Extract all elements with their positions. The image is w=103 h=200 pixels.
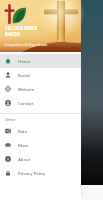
staticText: Privacy Policy (18, 170, 46, 176)
button[interactable]: Contact (0, 96, 81, 110)
button[interactable]: Social (0, 68, 81, 82)
button[interactable]: Website (0, 82, 81, 96)
staticText: TELUGU BIBLE (5, 25, 38, 31)
button[interactable]: Recents (75, 188, 84, 197)
button[interactable]: More (0, 138, 81, 152)
staticText: Social (18, 72, 30, 78)
staticText: telugubibleradio@gmail.com (4, 43, 48, 47)
staticText: Other (5, 117, 16, 122)
staticText: RADIO (5, 31, 20, 37)
staticText: About (18, 156, 31, 162)
button[interactable]: Rate (0, 124, 81, 138)
button[interactable]: Privacy Policy (0, 166, 81, 180)
staticText: More (18, 142, 29, 148)
staticText: Website (18, 86, 35, 92)
button[interactable]: About (0, 152, 81, 166)
staticText: Rate (18, 128, 28, 134)
staticText: Home (18, 58, 31, 64)
button[interactable]: Home (0, 54, 81, 68)
staticText: Contact (18, 100, 34, 106)
